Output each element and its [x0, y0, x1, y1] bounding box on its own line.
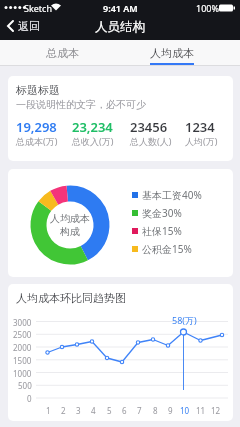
staticText: 人员结构 — [95, 19, 145, 35]
staticText: 1500 — [13, 355, 32, 366]
staticText: 总人数(人) — [130, 135, 172, 147]
button[interactable]: 返回 — [0, 14, 50, 40]
staticText: 公积金15% — [142, 242, 192, 256]
staticText: 5 — [107, 405, 112, 415]
staticText: 7 — [137, 405, 142, 415]
staticText: 人均成本环比同趋势图 — [16, 291, 126, 305]
staticText: 10 — [180, 405, 190, 415]
staticText: 人均成本 — [50, 212, 90, 225]
staticText: 1 — [46, 405, 51, 415]
staticText: 一段说明性的文字，必不可少 — [16, 98, 146, 111]
staticText: 6 — [122, 405, 127, 415]
staticText: 4 — [91, 405, 96, 415]
button[interactable]: 人均成本 — [122, 40, 222, 65]
staticText: 3000 — [13, 317, 32, 328]
staticText: 奖金30% — [142, 206, 182, 220]
staticText: 总成本 — [46, 46, 79, 60]
staticText: 9 — [168, 405, 173, 415]
staticText: 返回 — [18, 19, 40, 33]
staticText: 总收入(万) — [72, 135, 114, 147]
staticText: 2500 — [13, 329, 32, 340]
staticText: 3 — [76, 405, 81, 415]
staticText: 构成 — [60, 225, 80, 238]
staticText: 1000 — [13, 368, 32, 379]
staticText: 58(万) — [172, 314, 197, 325]
staticText: 12 — [211, 405, 221, 415]
staticText: 2 — [61, 405, 66, 415]
staticText: 19,298 — [16, 118, 57, 136]
staticText: 人均(万) — [185, 135, 218, 147]
staticText: 100% — [196, 2, 219, 14]
staticText: 总成本(万) — [16, 135, 58, 147]
staticText: 9:41 AM — [103, 2, 138, 14]
staticText: 23456 — [130, 118, 168, 136]
staticText: 500 — [18, 380, 32, 391]
staticText: 8 — [153, 405, 158, 415]
staticText: 社保15% — [142, 224, 182, 238]
staticText: 基本工资40% — [142, 188, 202, 202]
staticText: 1234 — [185, 118, 215, 136]
staticText: Sketch — [24, 2, 52, 14]
staticText: 0 — [27, 393, 32, 404]
staticText: 标题标题 — [16, 83, 60, 97]
staticText: 11 — [196, 405, 206, 415]
button[interactable]: 总成本 — [12, 40, 112, 65]
staticText: 23,234 — [72, 118, 113, 136]
staticText: 2000 — [13, 342, 32, 353]
staticText: 人均成本 — [150, 46, 194, 60]
